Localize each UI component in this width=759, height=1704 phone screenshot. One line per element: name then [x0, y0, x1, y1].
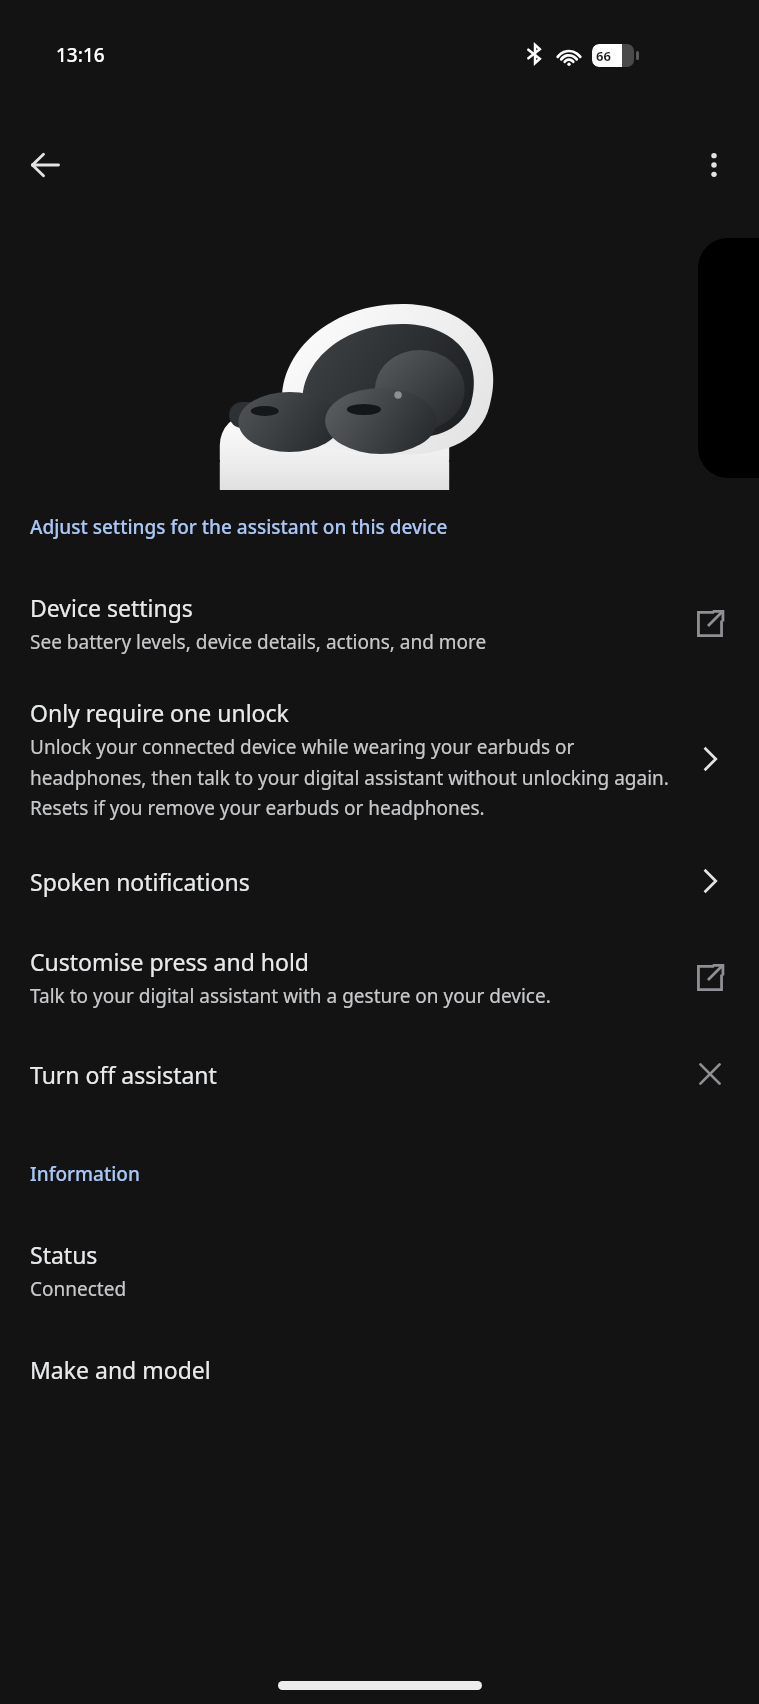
staticText: Make and model	[30, 1354, 211, 1385]
staticText: Adjust settings for the assistant on thi…	[30, 514, 448, 540]
button[interactable]: Only require one unlock	[0, 697, 759, 820]
staticText: Connected	[30, 1276, 127, 1302]
staticText: Spoken notifications	[30, 866, 250, 897]
staticText: Customise press and hold	[30, 946, 310, 977]
staticText: Status	[30, 1239, 98, 1270]
staticText: Device settings	[30, 592, 193, 623]
staticText: Only require one unlock	[30, 697, 289, 728]
staticText: See battery levels, device details, acti…	[30, 629, 487, 655]
button[interactable]: Make and model	[0, 1346, 759, 1392]
button[interactable]: Turn off assistant	[0, 1051, 759, 1097]
staticText: Turn off assistant	[30, 1059, 217, 1090]
staticText: Information	[30, 1161, 140, 1187]
button[interactable]: Information	[0, 1153, 759, 1195]
button[interactable]: Open device settings	[0, 592, 759, 655]
staticText: Unlock your connected device while weari…	[30, 734, 673, 820]
button[interactable]: Back	[12, 132, 78, 198]
button[interactable]: Status	[0, 1239, 759, 1302]
button[interactable]: Spoken notifications	[0, 858, 759, 904]
button[interactable]: Customise press and hold	[0, 946, 759, 1009]
button[interactable]: More options	[681, 132, 747, 198]
staticText: 13:16	[56, 42, 105, 68]
button[interactable]: Adjust settings for the assistant on thi…	[0, 506, 759, 548]
staticText: Talk to your digital assistant with a ge…	[30, 983, 551, 1009]
staticText: 66	[596, 47, 611, 65]
